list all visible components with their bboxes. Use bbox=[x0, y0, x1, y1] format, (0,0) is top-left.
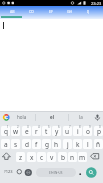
button[interactable] bbox=[15, 164, 24, 176]
staticText: x bbox=[30, 153, 34, 162]
staticText: q bbox=[4, 127, 8, 136]
button[interactable]: t bbox=[42, 126, 51, 136]
staticText: j bbox=[67, 140, 69, 149]
button[interactable]: u bbox=[63, 126, 72, 136]
staticText: z bbox=[19, 153, 23, 162]
button[interactable]: z bbox=[16, 152, 25, 162]
button[interactable]: v bbox=[47, 152, 56, 162]
staticText: el bbox=[50, 114, 54, 120]
staticText: ?123 bbox=[4, 169, 13, 174]
button[interactable]: AB bbox=[2, 6, 22, 17]
button[interactable]: b bbox=[58, 152, 67, 162]
button[interactable]: f bbox=[32, 139, 41, 149]
staticText: u bbox=[65, 127, 70, 136]
staticText: b bbox=[61, 153, 65, 162]
staticText: 1 bbox=[7, 125, 9, 129]
staticText: ñ bbox=[96, 140, 101, 149]
staticText: s bbox=[14, 140, 18, 149]
button[interactable] bbox=[1, 164, 15, 176]
staticText: 9 bbox=[89, 125, 91, 129]
staticText: CD bbox=[29, 9, 34, 14]
staticText: IJ bbox=[87, 9, 90, 14]
staticText: 23:23 bbox=[91, 1, 102, 6]
staticText: a bbox=[4, 140, 8, 149]
staticText: EF bbox=[49, 9, 53, 14]
button[interactable]: GH bbox=[60, 6, 79, 17]
button[interactable]: m bbox=[78, 152, 87, 162]
button[interactable]: s bbox=[11, 139, 20, 149]
staticText: i bbox=[77, 127, 79, 136]
button[interactable] bbox=[69, 112, 93, 123]
button[interactable]: k bbox=[73, 139, 82, 149]
staticText: 3 bbox=[27, 125, 29, 129]
staticText: e bbox=[25, 127, 29, 136]
button[interactable] bbox=[1, 152, 15, 162]
button[interactable]: ES•EN•US bbox=[36, 168, 76, 177]
staticText: f bbox=[35, 140, 38, 149]
button[interactable] bbox=[93, 112, 102, 123]
staticText: 7 bbox=[69, 125, 71, 129]
button[interactable]: ñ bbox=[94, 139, 103, 149]
staticText: v bbox=[50, 153, 54, 162]
button[interactable] bbox=[37, 112, 67, 123]
staticText: AB bbox=[10, 9, 15, 14]
staticText: 5 bbox=[48, 125, 50, 129]
staticText: y bbox=[55, 127, 59, 136]
button[interactable]: g bbox=[42, 139, 51, 149]
button[interactable] bbox=[76, 164, 85, 176]
button[interactable] bbox=[24, 164, 33, 176]
button[interactable] bbox=[16, 112, 54, 123]
staticText: t bbox=[45, 127, 48, 136]
button[interactable]: q bbox=[1, 126, 10, 136]
button[interactable]: l bbox=[83, 139, 92, 149]
staticText: l bbox=[87, 140, 89, 149]
button[interactable]: p bbox=[94, 126, 103, 136]
staticText: h bbox=[54, 140, 59, 149]
button[interactable]: n bbox=[68, 152, 77, 162]
staticText: 6 bbox=[58, 125, 60, 129]
button[interactable]: j bbox=[63, 139, 72, 149]
staticText: n bbox=[70, 153, 75, 162]
staticText: hola bbox=[17, 114, 27, 120]
button[interactable]: IJ bbox=[79, 6, 98, 17]
staticText: 8 bbox=[79, 125, 81, 129]
button[interactable]: CD bbox=[22, 6, 41, 17]
button[interactable]: x bbox=[27, 152, 36, 162]
staticText: o bbox=[86, 127, 90, 136]
staticText: c bbox=[40, 153, 44, 162]
staticText: 2 bbox=[17, 125, 19, 129]
staticText: r bbox=[35, 127, 38, 136]
button[interactable] bbox=[86, 167, 98, 179]
button[interactable]: e bbox=[22, 126, 31, 136]
staticText: d bbox=[25, 140, 29, 149]
button[interactable]: y bbox=[52, 126, 61, 136]
button[interactable]: EF bbox=[41, 6, 60, 17]
button[interactable]: h bbox=[52, 139, 61, 149]
staticText: ES•EN•US bbox=[49, 171, 63, 175]
button[interactable]: c bbox=[37, 152, 46, 162]
button[interactable]: r bbox=[32, 126, 41, 136]
button[interactable]: a bbox=[1, 139, 10, 149]
staticText: p bbox=[97, 127, 101, 136]
button[interactable]: o bbox=[83, 126, 92, 136]
staticText: g bbox=[45, 140, 49, 149]
staticText: 4 bbox=[38, 125, 40, 129]
button[interactable]: w bbox=[11, 126, 20, 136]
staticText: GH bbox=[67, 9, 73, 14]
staticText: k bbox=[76, 140, 80, 149]
button[interactable]: d bbox=[22, 139, 31, 149]
staticText: la bbox=[79, 114, 83, 120]
staticText: w bbox=[13, 127, 19, 136]
staticText: m bbox=[79, 153, 86, 162]
button[interactable] bbox=[89, 152, 103, 162]
button[interactable]: i bbox=[73, 126, 82, 136]
staticText: 0 bbox=[99, 125, 101, 129]
